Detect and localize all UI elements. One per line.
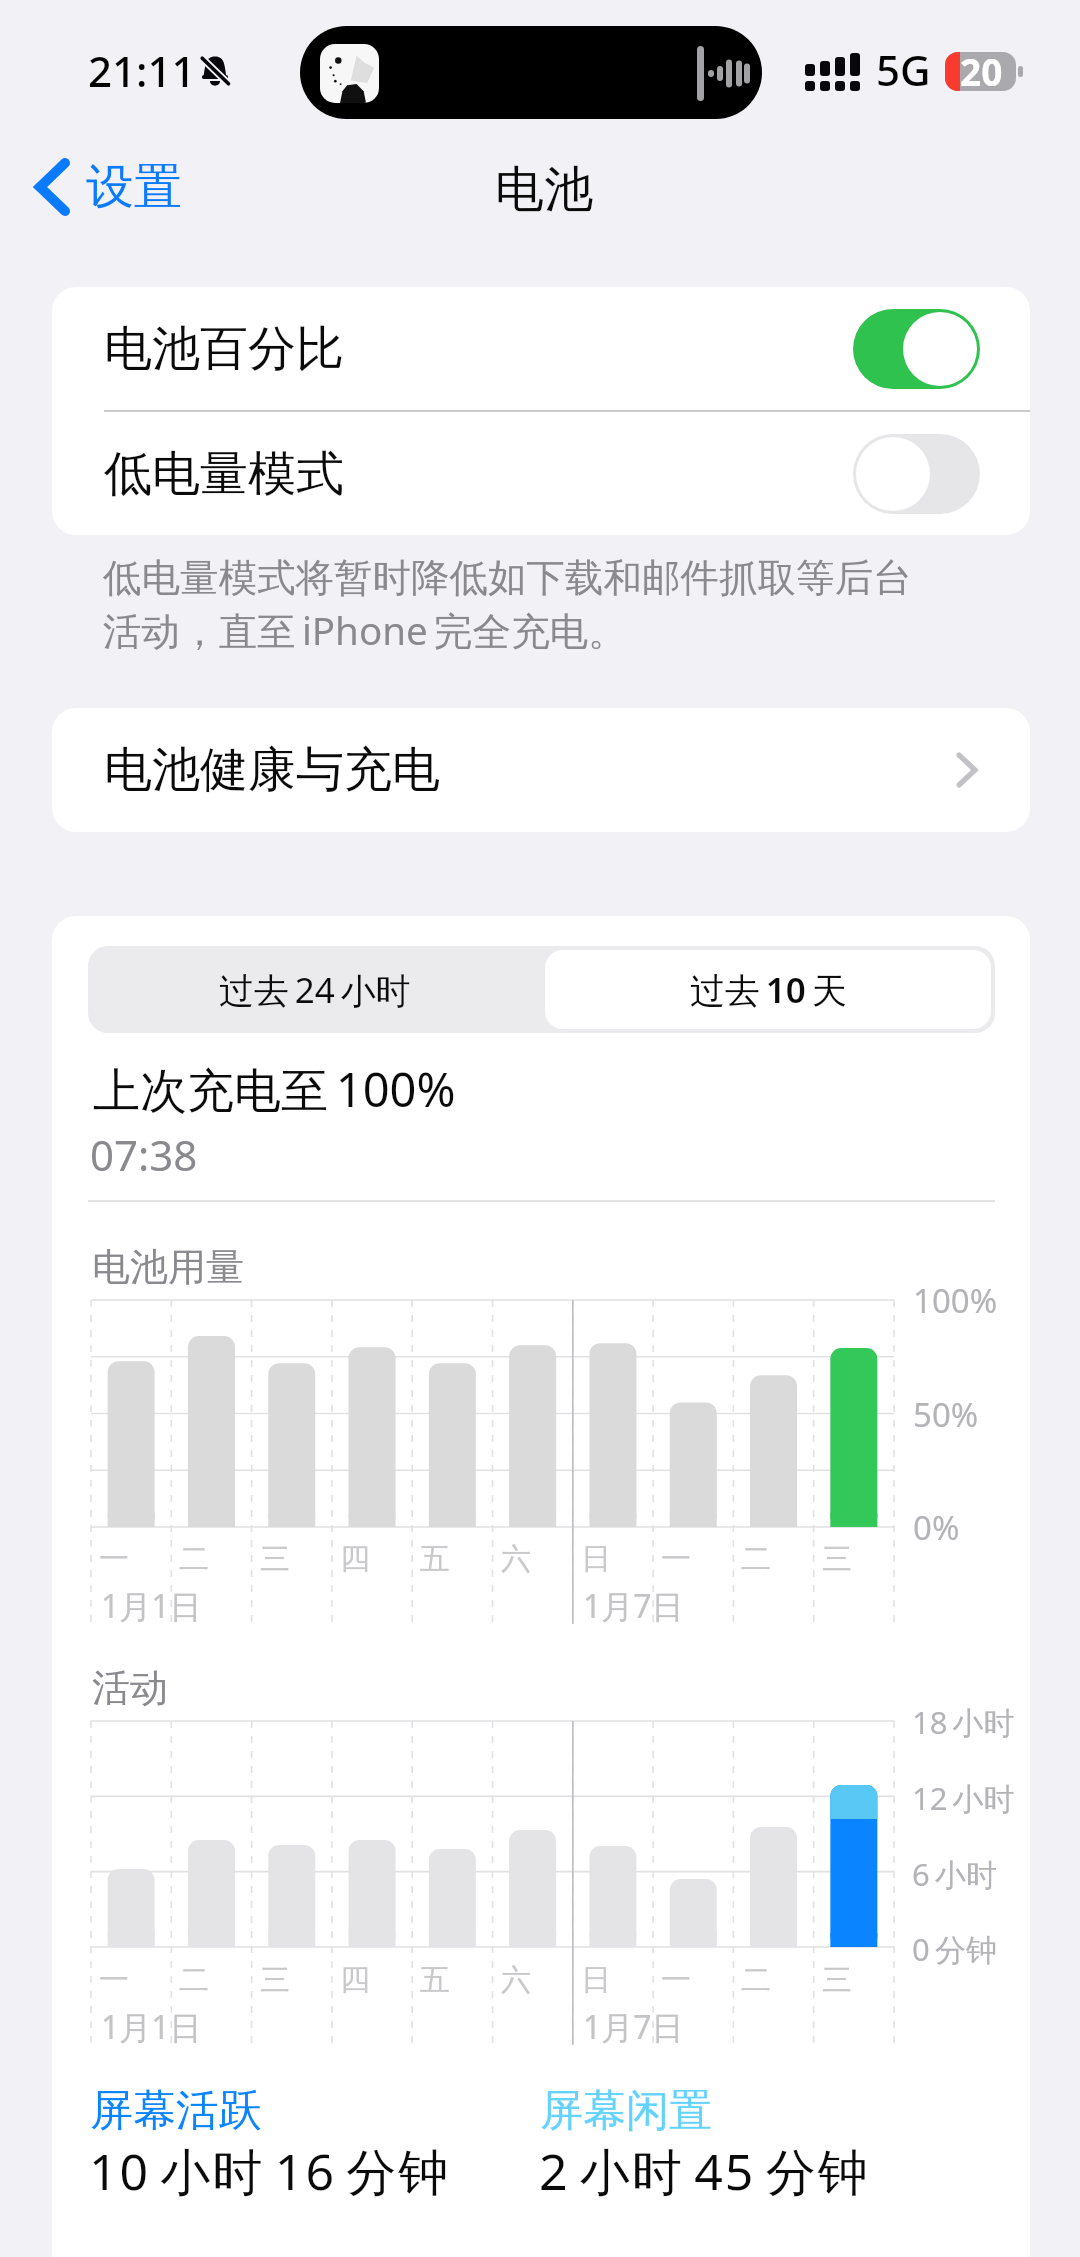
staticText: 六 [501,1540,531,1578]
staticText: 五 [420,1540,450,1578]
staticText: 六 [501,1961,531,1999]
staticText: 0% [913,1505,960,1550]
staticText: 低电量模式将暂时降低如下载和邮件抓取等后台 [103,554,912,603]
staticText: 1月1日 [101,1584,202,1628]
staticText: 屏幕闲置 [540,2084,712,2138]
button[interactable]: 设置 [16,140,190,234]
staticText: 过去 24 小时 [219,966,411,1014]
staticText: 一 [99,1540,129,1578]
staticText: 1月7日 [583,1584,684,1628]
button[interactable]: Switch on [853,309,980,389]
staticText: 50% [913,1392,979,1437]
staticText: 屏幕活跃 [90,2084,262,2138]
staticText: 活动，直至 iPhone 完全充电。 [103,604,627,657]
staticText: 二 [179,1540,209,1578]
staticText: 三 [260,1540,290,1578]
staticText: 三 [260,1961,290,1999]
staticText: 12 小时 [912,1777,1015,1819]
other: Cellular signal [805,53,861,93]
button[interactable]: 过去 24 小时 [88,946,541,1033]
staticText: 07:38 [90,1126,198,1183]
staticText: 三 [822,1961,852,1999]
staticText: 设置 [86,157,182,217]
staticText: 二 [741,1540,771,1578]
staticText: 6 小时 [912,1853,997,1895]
staticText: 四 [340,1540,370,1578]
staticText: 电池用量 [92,1243,244,1291]
staticText: 1月1日 [101,2005,202,2049]
staticText: 电池百分比 [104,319,344,379]
other: Silent mode [197,53,233,89]
staticText: 一 [99,1961,129,1999]
staticText: 上次充电至 100% [93,1057,456,1121]
staticText: 低电量模式 [104,444,344,504]
staticText: 5G [876,41,931,98]
staticText: 20 [960,46,1003,96]
button[interactable]: 电池百分比 [52,287,1030,410]
staticText: 日 [581,1540,611,1578]
staticText: 电池 [495,159,593,221]
staticText: 18 小时 [912,1701,1015,1743]
button[interactable]: Switch off [853,434,980,514]
staticText: 五 [420,1961,450,1999]
staticText: 21:11 [88,42,196,99]
staticText: 日 [581,1961,611,1999]
staticText: 1月7日 [583,2005,684,2049]
staticText: 电池健康与充电 [104,740,440,800]
staticText: 活动 [92,1664,168,1712]
staticText: 四 [340,1961,370,1999]
staticText: 一 [661,1540,691,1578]
staticText: 三 [822,1540,852,1578]
staticText: 一 [661,1961,691,1999]
button[interactable]: 过去 10 天 [545,950,991,1029]
button[interactable]: 低电量模式 [52,412,1030,535]
staticText: 0 分钟 [912,1928,997,1970]
staticText: 过去 10 天 [690,966,847,1014]
staticText: 100% [913,1278,998,1323]
button[interactable]: 电池健康与充电 [52,708,1030,832]
staticText: 二 [179,1961,209,1999]
staticText: 10 小时 16 分钟 [89,2137,451,2205]
staticText: 二 [741,1961,771,1999]
staticText: 2 小时 45 分钟 [539,2137,870,2205]
